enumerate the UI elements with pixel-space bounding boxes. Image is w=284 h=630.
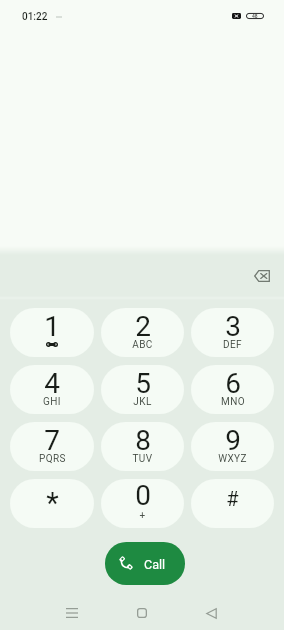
button[interactable]: 7	[10, 422, 94, 471]
staticText: 8	[135, 424, 151, 457]
staticText: 4	[44, 367, 60, 400]
button[interactable]: Home	[124, 596, 160, 630]
staticText: +	[139, 510, 146, 522]
staticText: #	[226, 487, 239, 510]
button[interactable]: Recents	[54, 596, 90, 630]
staticText: ABC	[132, 339, 153, 351]
staticText: Call	[144, 557, 166, 572]
button[interactable]: 4	[10, 365, 94, 414]
staticText: DEF	[223, 339, 242, 351]
staticText: 01:22	[22, 11, 48, 23]
staticText: 3	[225, 310, 241, 343]
staticText: 5	[135, 367, 151, 400]
button[interactable]: 6	[191, 365, 274, 414]
button[interactable]: Call	[105, 542, 185, 585]
button[interactable]: 1	[10, 308, 94, 357]
staticText: 48	[252, 13, 258, 19]
button[interactable]: Back	[193, 596, 229, 630]
staticText: JKL	[133, 396, 152, 408]
staticText: 1	[44, 310, 60, 343]
staticText: WXYZ	[218, 453, 247, 465]
staticText: MNO	[221, 396, 245, 408]
button[interactable]: 8	[101, 422, 184, 471]
button[interactable]: 5	[101, 365, 184, 414]
button[interactable]: 3	[191, 308, 274, 357]
staticText: 6	[225, 367, 241, 400]
button[interactable]: 9	[191, 422, 274, 471]
staticText: TUV	[132, 453, 153, 465]
staticText: *	[46, 486, 59, 520]
button[interactable]: #	[191, 479, 274, 528]
staticText: 2	[135, 310, 151, 343]
staticText: 9	[225, 424, 241, 457]
staticText: 0	[135, 479, 151, 512]
staticText: PQRS	[39, 453, 66, 465]
button[interactable]: 0	[101, 479, 184, 528]
button[interactable]: Backspace	[248, 262, 276, 290]
staticText: 7	[44, 424, 60, 457]
button[interactable]: *	[10, 479, 94, 528]
button[interactable]: 2	[101, 308, 184, 357]
staticText: GHI	[43, 396, 61, 408]
